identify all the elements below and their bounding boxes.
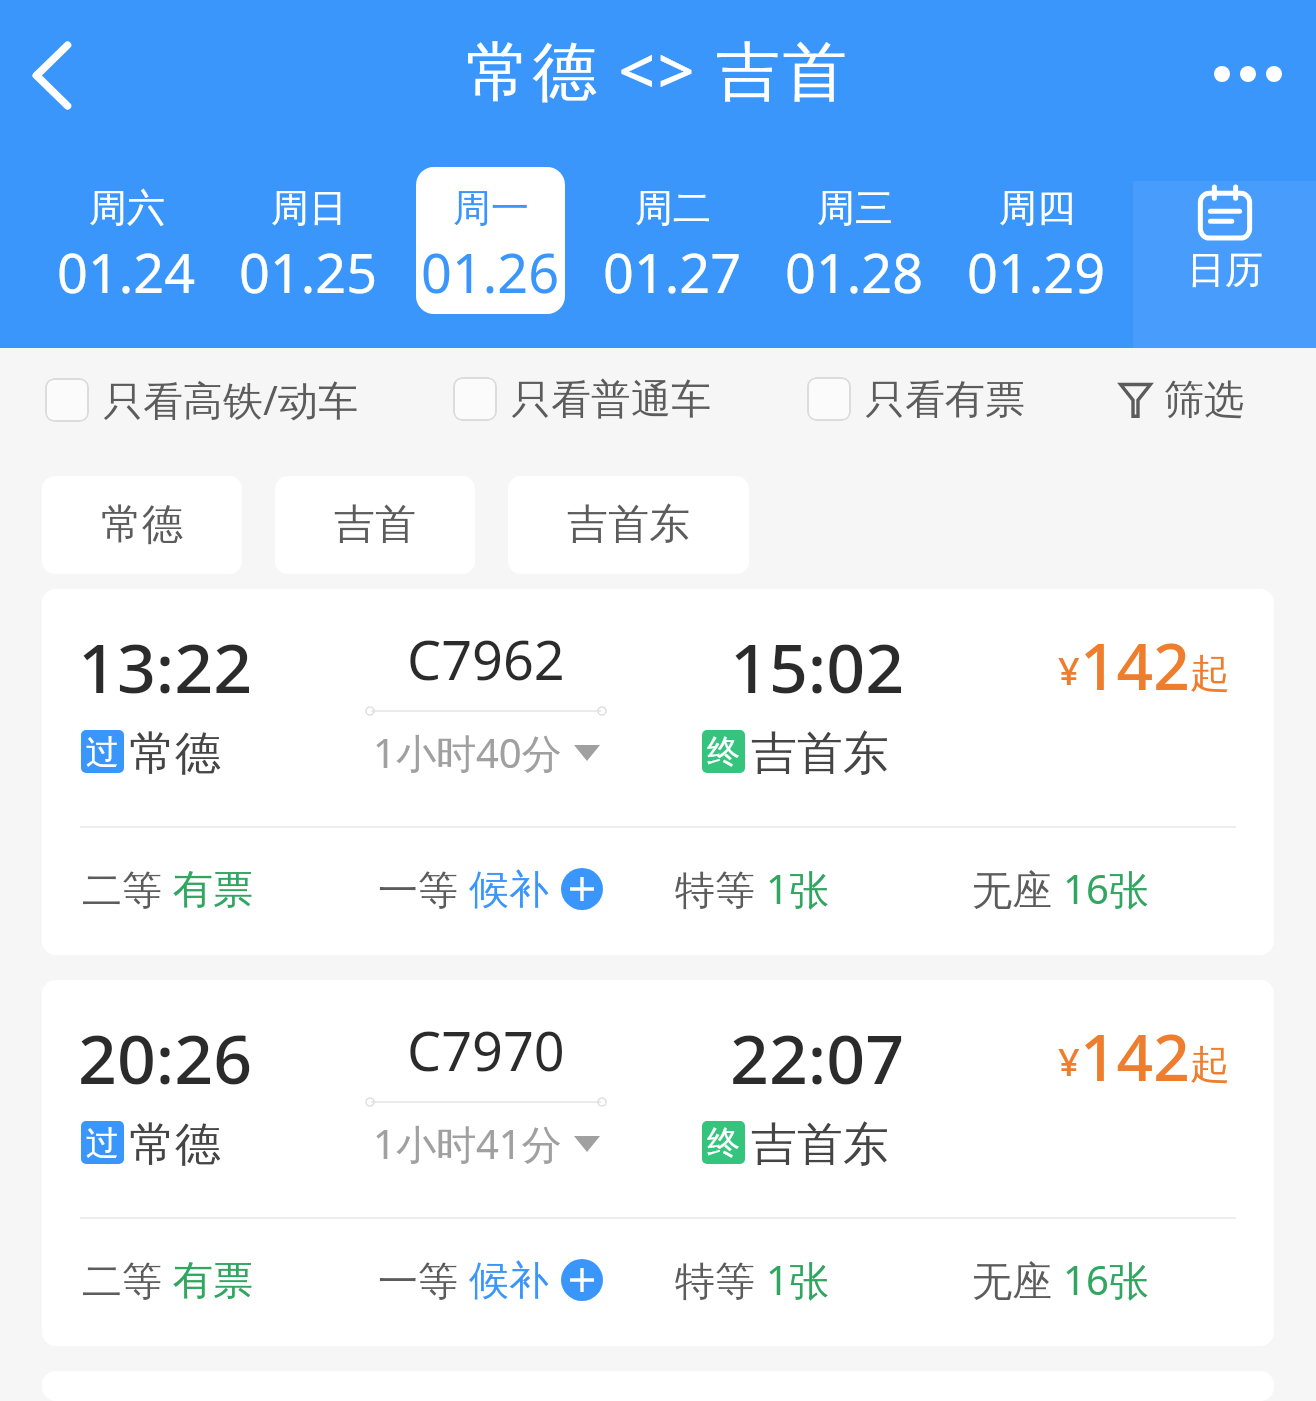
staticText: 01.29 — [967, 235, 1106, 309]
staticText: ¥ — [1058, 1035, 1080, 1087]
button[interactable]: 13:22 — [42, 589, 1274, 955]
other: Add waitlist — [561, 1259, 603, 1301]
staticText: 特等 — [675, 861, 766, 916]
button[interactable]: Calendar — [1133, 181, 1316, 348]
button[interactable]: 20:26 — [42, 980, 1274, 1346]
staticText: C7970 — [407, 1013, 565, 1087]
button[interactable]: 常德 — [42, 476, 242, 574]
staticText: 只看普通车 — [511, 374, 711, 424]
staticText: 16张 — [1063, 861, 1149, 916]
button[interactable]: 周日 — [217, 150, 399, 348]
staticText: 01.24 — [57, 235, 196, 309]
staticText: 终 — [707, 1122, 740, 1164]
staticText: 142 — [1080, 622, 1190, 709]
staticText: 无座 — [972, 861, 1063, 916]
button[interactable]: 周一 — [399, 150, 581, 348]
staticText: 特等 — [675, 1252, 766, 1307]
staticText: 周四 — [999, 184, 1075, 232]
staticText: 筛选 — [1164, 374, 1244, 424]
button[interactable]: Back — [6, 29, 98, 121]
button[interactable]: 周二 — [581, 150, 763, 348]
staticText: 起 — [1190, 1039, 1230, 1089]
staticText: 周三 — [817, 184, 893, 232]
staticText: 候补 — [469, 864, 549, 914]
staticText: 无座 — [972, 1252, 1063, 1307]
staticText: 有票 — [173, 1255, 253, 1305]
staticText: 二等 — [82, 861, 173, 916]
staticText: 终 — [707, 731, 740, 773]
staticText: 过 — [86, 731, 119, 773]
staticText: 二等 — [82, 1252, 173, 1307]
staticText: 吉首东 — [751, 725, 889, 783]
staticText: 周一 — [453, 184, 529, 232]
staticText: 只看有票 — [865, 374, 1025, 424]
staticText: ¥ — [1058, 644, 1080, 696]
button[interactable]: 周三 — [763, 150, 945, 348]
staticText: 13:22 — [78, 620, 253, 713]
button[interactable]: 只看普通车 — [453, 374, 711, 424]
button[interactable]: 周六 — [35, 150, 217, 348]
staticText: 起 — [1190, 648, 1230, 698]
staticText: 周六 — [89, 184, 165, 232]
staticText: 常德 <> 吉首 — [466, 26, 850, 113]
staticText: 22:07 — [730, 1011, 905, 1104]
staticText: 过 — [86, 1122, 119, 1164]
staticText: 142 — [1080, 1013, 1190, 1100]
button[interactable]: 只看有票 — [807, 374, 1025, 424]
staticText: 候补 — [469, 1255, 549, 1305]
button[interactable]: 只看高铁/动车 — [45, 372, 358, 427]
button[interactable]: 周四 — [945, 150, 1127, 348]
staticText: 一等 — [378, 1252, 469, 1307]
staticText: 1张 — [766, 1252, 829, 1307]
staticText: 吉首东 — [567, 499, 690, 551]
staticText: 1张 — [766, 861, 829, 916]
staticText: 01.26 — [421, 235, 560, 309]
staticText: 15:02 — [730, 620, 905, 713]
staticText: 01.27 — [603, 235, 742, 309]
staticText: 周日 — [271, 184, 347, 232]
staticText: 01.28 — [785, 235, 924, 309]
button[interactable]: 吉首 — [275, 476, 475, 574]
staticText: 周二 — [635, 184, 711, 232]
staticText: 日历 — [1187, 246, 1263, 294]
staticText: 20:26 — [78, 1011, 253, 1104]
staticText: 只看高铁/动车 — [103, 372, 358, 427]
staticText: 1小时40分 — [373, 725, 562, 780]
staticText: 吉首东 — [751, 1116, 889, 1174]
staticText: 吉首 — [334, 499, 416, 551]
button[interactable]: 筛选 — [1120, 374, 1244, 424]
staticText: 16张 — [1063, 1252, 1149, 1307]
staticText: 常德 — [129, 725, 221, 783]
button[interactable]: 吉首东 — [508, 476, 749, 574]
staticText: 1小时41分 — [373, 1116, 562, 1171]
staticText: 常德 — [101, 499, 183, 551]
staticText: C7962 — [407, 622, 565, 696]
staticText: 常德 — [129, 1116, 221, 1174]
button[interactable]: More options — [1200, 27, 1296, 123]
other: Add waitlist — [561, 868, 603, 910]
staticText: 一等 — [378, 861, 469, 916]
staticText: 01.25 — [239, 235, 378, 309]
staticText: 有票 — [173, 864, 253, 914]
